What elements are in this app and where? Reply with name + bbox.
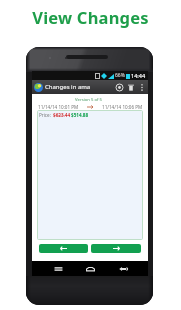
button[interactable]: More options — [137, 82, 147, 92]
staticText: 66% — [115, 72, 125, 79]
staticText: $514.88 — [71, 112, 89, 118]
button[interactable]: Previous version — [39, 244, 88, 253]
staticText: 11/14/14 10:01 PM — [38, 104, 79, 110]
staticText: 11/14/14 10:06 PM — [102, 104, 143, 110]
staticText: Price: — [39, 112, 53, 118]
staticText: Version 5 of 5 — [32, 97, 145, 103]
button[interactable]: Recent apps — [51, 262, 65, 276]
button[interactable]: Delete — [125, 81, 137, 93]
staticText: $623.44 — [53, 112, 71, 118]
staticText: 14:44 — [131, 72, 146, 79]
button[interactable]: Back — [116, 262, 130, 276]
button[interactable]: Home — [83, 262, 97, 276]
staticText: View Changes — [0, 6, 181, 28]
button[interactable]: Next version — [91, 244, 141, 253]
button[interactable]: Settings — [113, 81, 125, 93]
staticText: Changes in ama — [45, 83, 91, 91]
